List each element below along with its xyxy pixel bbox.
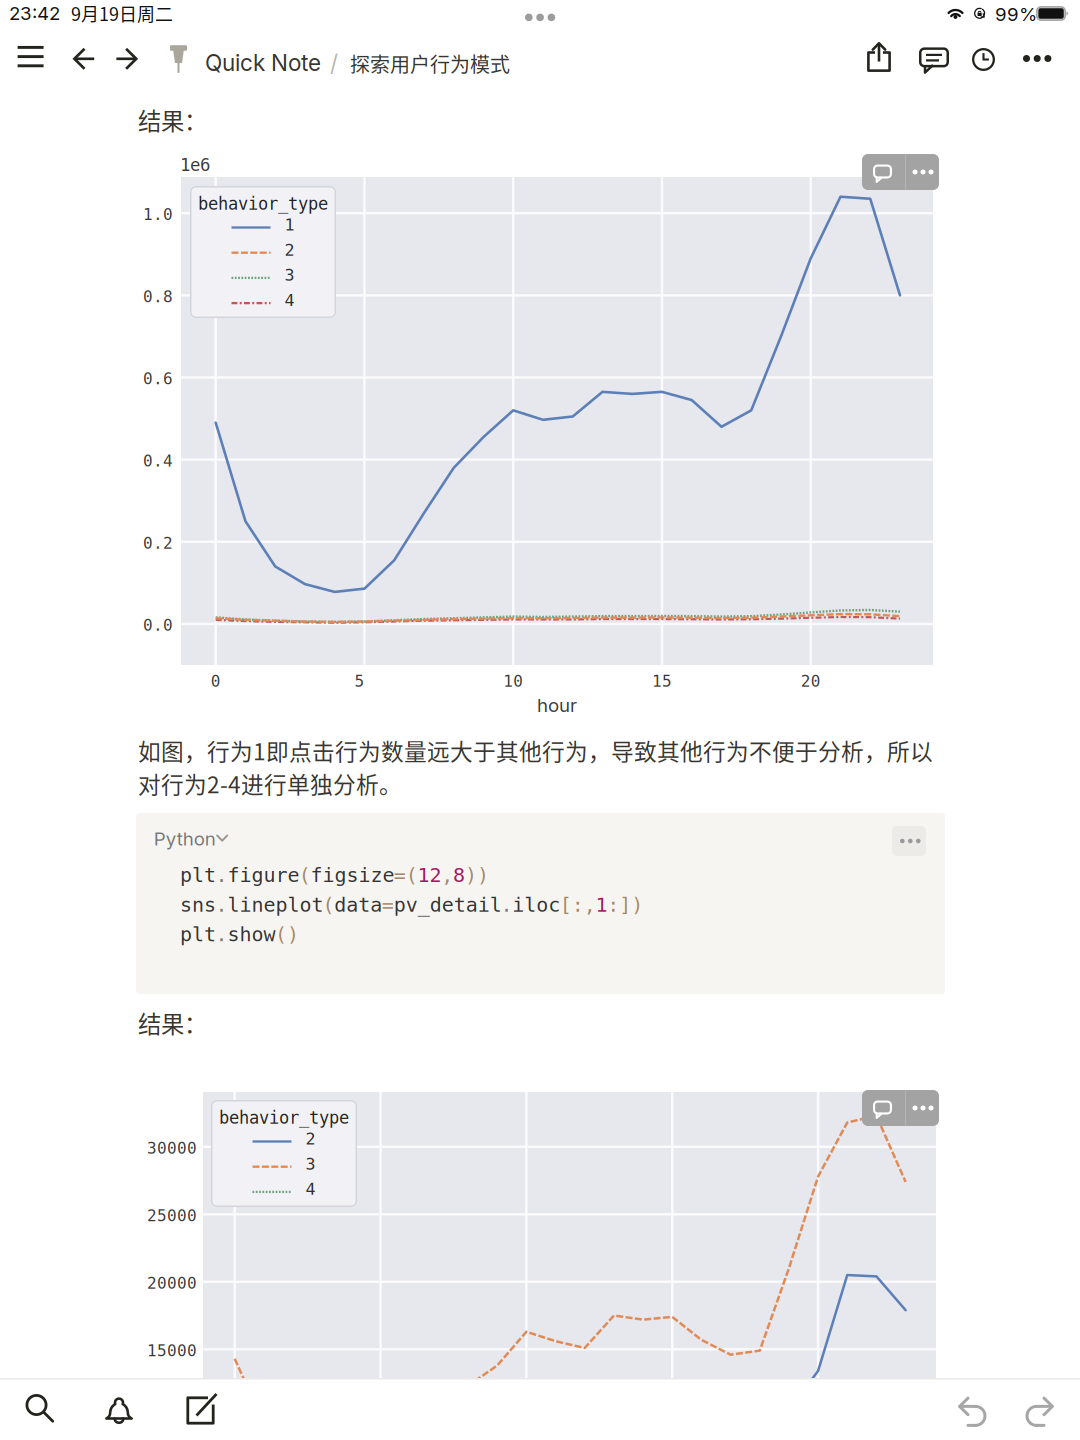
staticText: ( bbox=[322, 893, 334, 916]
staticText: Quick Note bbox=[205, 49, 321, 76]
staticText: 1e6 bbox=[180, 155, 210, 175]
button[interactable]: Menu bbox=[8, 44, 54, 90]
staticText: 0.4 bbox=[143, 452, 173, 470]
staticText: / bbox=[330, 49, 338, 76]
staticText: ( bbox=[299, 863, 311, 887]
button[interactable]: Back bbox=[62, 44, 108, 90]
staticText: plt bbox=[180, 863, 216, 887]
staticText: 30000 bbox=[147, 1139, 197, 1157]
staticText: () bbox=[275, 923, 299, 946]
staticText: lineplot bbox=[227, 893, 323, 916]
button[interactable]: Python bbox=[154, 827, 264, 859]
staticText: 15000 bbox=[147, 1341, 197, 1360]
staticText: 99% bbox=[995, 3, 1037, 26]
button[interactable]: Forward bbox=[106, 44, 152, 90]
staticText: 1 bbox=[595, 893, 607, 916]
staticText: 4 bbox=[284, 291, 294, 310]
button[interactable]: Notifications bbox=[92, 1378, 146, 1440]
button[interactable]: More options bbox=[905, 1090, 939, 1126]
staticText: 25000 bbox=[147, 1206, 197, 1225]
button[interactable]: More bbox=[1014, 44, 1060, 90]
staticText: . bbox=[216, 863, 228, 887]
staticText: Python bbox=[154, 827, 216, 850]
staticText: 15 bbox=[652, 672, 672, 691]
staticText: 2 bbox=[284, 240, 294, 260]
staticText: figure bbox=[227, 863, 299, 887]
button[interactable]: More options bbox=[905, 154, 939, 190]
staticText: 1 bbox=[284, 215, 294, 234]
button[interactable]: Code block options bbox=[892, 826, 926, 856]
button[interactable]: Share bbox=[856, 44, 902, 90]
staticText: = bbox=[382, 893, 394, 916]
staticText: )) bbox=[465, 863, 489, 887]
staticText: . bbox=[216, 923, 228, 946]
staticText: 20 bbox=[801, 672, 821, 691]
staticText: 0 bbox=[211, 672, 221, 691]
staticText: 0.6 bbox=[143, 369, 173, 388]
button[interactable]: Search bbox=[14, 1378, 68, 1440]
staticText: 3 bbox=[284, 265, 294, 285]
staticText: 0.8 bbox=[143, 287, 173, 306]
staticText: [:, bbox=[560, 893, 596, 916]
staticText: data bbox=[334, 893, 382, 916]
staticText: 23:42 bbox=[9, 2, 60, 25]
staticText: 12 bbox=[417, 863, 441, 887]
staticText: =( bbox=[394, 863, 418, 887]
button[interactable]: Comment bbox=[862, 154, 905, 190]
staticText: 1.0 bbox=[143, 205, 173, 224]
staticText: 结果： bbox=[138, 103, 207, 137]
staticText: 8 bbox=[453, 863, 465, 887]
button[interactable]: Comment bbox=[862, 1090, 905, 1126]
staticText: , bbox=[441, 863, 453, 887]
staticText: show bbox=[227, 923, 275, 946]
button[interactable]: New note bbox=[172, 1378, 226, 1440]
staticText: behavior_type bbox=[198, 194, 328, 214]
staticText: pv_detail bbox=[394, 893, 502, 916]
staticText: hour bbox=[537, 694, 577, 717]
button[interactable]: 探索用户行为模式 bbox=[350, 44, 525, 90]
staticText: 探索用户行为模式 bbox=[350, 49, 510, 78]
staticText: 0.2 bbox=[143, 534, 173, 552]
staticText: 如图，行为1即点击行为数量远大于其他行为，导致其他行为不便于分析，所以 bbox=[138, 734, 933, 767]
staticText: behavior_type bbox=[219, 1108, 349, 1128]
staticText: sns bbox=[180, 893, 216, 916]
staticText: 2 bbox=[305, 1129, 315, 1148]
staticText: . bbox=[216, 893, 228, 916]
staticText: 4 bbox=[305, 1179, 315, 1199]
button[interactable]: Quick Note bbox=[170, 44, 325, 90]
button[interactable]: Redo bbox=[1012, 1378, 1066, 1440]
staticText: 10 bbox=[503, 672, 523, 691]
staticText: 对行为2-4进行单独分析。 bbox=[138, 767, 402, 800]
staticText: 3 bbox=[305, 1154, 315, 1174]
staticText: 结果： bbox=[138, 1006, 207, 1040]
staticText: 0.0 bbox=[143, 616, 173, 635]
staticText: :]) bbox=[607, 893, 643, 916]
staticText: 20000 bbox=[147, 1274, 197, 1292]
button[interactable]: Comments bbox=[910, 44, 956, 90]
button[interactable]: History bbox=[960, 44, 1006, 90]
staticText: 9月19日周二 bbox=[71, 0, 173, 26]
staticText: 5 bbox=[354, 672, 364, 691]
staticText: . bbox=[500, 893, 512, 916]
staticText: plt bbox=[180, 923, 216, 946]
staticText: figsize bbox=[311, 863, 395, 887]
button[interactable]: Undo bbox=[945, 1378, 999, 1440]
staticText: iloc bbox=[512, 893, 560, 916]
